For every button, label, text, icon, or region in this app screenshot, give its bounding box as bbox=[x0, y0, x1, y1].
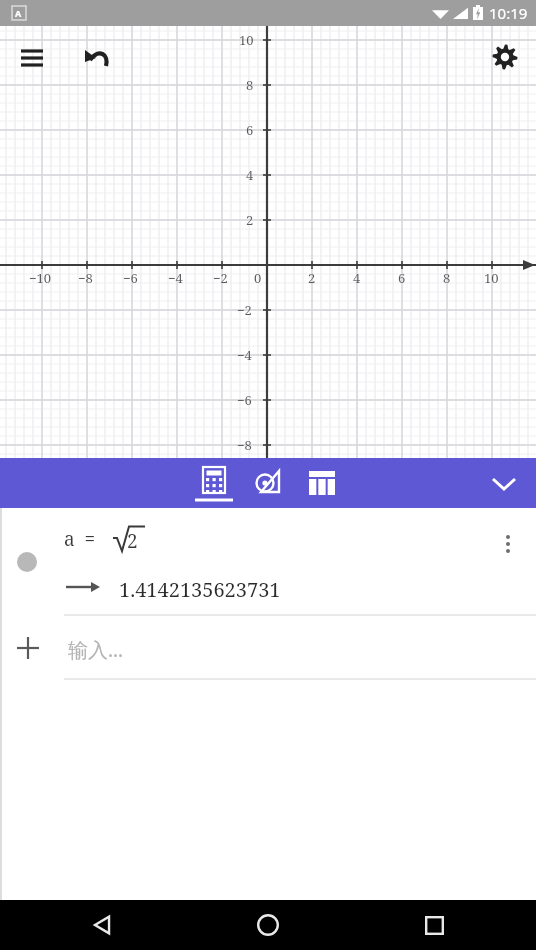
other: Add bbox=[8, 628, 48, 668]
button[interactable]: Menu bbox=[12, 38, 52, 78]
staticText: 2 bbox=[246, 211, 254, 229]
button[interactable]: Table bbox=[295, 458, 349, 508]
staticText: 10:19 bbox=[489, 3, 528, 23]
staticText: 10 bbox=[239, 31, 254, 49]
staticText: −8 bbox=[78, 269, 93, 287]
staticText: 1.4142135623731 bbox=[119, 576, 281, 603]
staticText: 10 bbox=[484, 269, 499, 287]
staticText: −6 bbox=[123, 269, 138, 287]
staticText: 4 bbox=[353, 269, 361, 287]
button[interactable]: More options bbox=[488, 524, 528, 564]
button[interactable]: Recents bbox=[410, 901, 458, 949]
button[interactable]: a = bbox=[0, 508, 536, 616]
button[interactable]: Back bbox=[78, 901, 126, 949]
staticText: −2 bbox=[237, 301, 252, 319]
staticText: −4 bbox=[168, 269, 183, 287]
staticText: 6 bbox=[398, 269, 406, 287]
button[interactable]: Algebra bbox=[187, 458, 241, 508]
staticText: −8 bbox=[237, 436, 252, 454]
staticText: 6 bbox=[246, 121, 254, 139]
button[interactable]: Tools bbox=[241, 458, 295, 508]
button[interactable]: Settings bbox=[484, 36, 526, 78]
staticText: A bbox=[15, 7, 22, 19]
button[interactable]: Collapse bbox=[482, 461, 526, 505]
button[interactable]: Home bbox=[244, 901, 292, 949]
staticText: 8 bbox=[246, 76, 254, 94]
staticText: −10 bbox=[29, 269, 52, 287]
staticText: a = bbox=[64, 526, 96, 552]
button[interactable]: Add bbox=[0, 616, 536, 680]
staticText: 输入... bbox=[68, 636, 123, 663]
staticText: 4 bbox=[246, 166, 254, 184]
staticText: 0 bbox=[254, 269, 262, 287]
staticText: 8 bbox=[443, 269, 451, 287]
staticText: 2 bbox=[308, 269, 316, 287]
button[interactable]: Undo bbox=[74, 36, 116, 78]
staticText: 2 bbox=[127, 528, 138, 554]
staticText: −2 bbox=[213, 269, 228, 287]
staticText: −6 bbox=[237, 391, 252, 409]
staticText: −4 bbox=[237, 346, 252, 364]
